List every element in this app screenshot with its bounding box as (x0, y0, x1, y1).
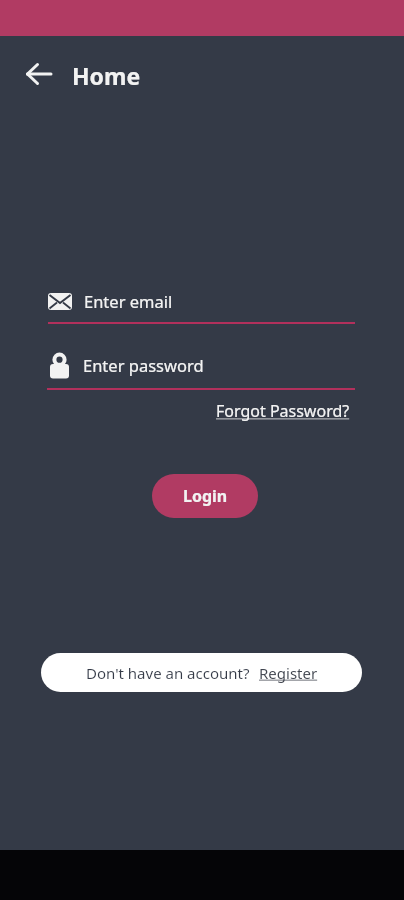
button[interactable]: Don't have an account? (41, 653, 362, 692)
staticText: Login (183, 485, 228, 507)
button[interactable]: Forgot Password? (216, 400, 350, 422)
staticText: Enter password (83, 354, 204, 376)
button[interactable]: Enter password (50, 351, 204, 379)
button[interactable]: Login (152, 474, 258, 518)
staticText: Enter email (84, 290, 173, 312)
staticText: Register (259, 663, 318, 683)
button[interactable]: Enter email (48, 290, 173, 312)
staticText: Don't have an account? (86, 663, 250, 683)
staticText: Home (72, 60, 141, 88)
button[interactable] (26, 63, 52, 85)
